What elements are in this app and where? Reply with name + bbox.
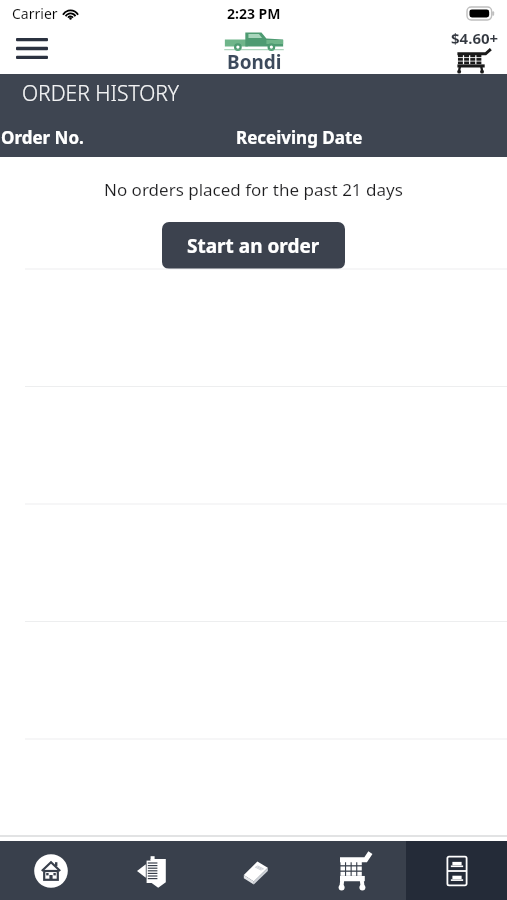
button[interactable]: Catalog bbox=[204, 841, 305, 900]
button[interactable]: Bondi bbox=[223, 27, 285, 74]
staticText: Bondi bbox=[227, 49, 282, 71]
button[interactable]: Cart bbox=[305, 841, 406, 900]
button[interactable]: Cart bbox=[451, 28, 499, 74]
button[interactable]: Orders bbox=[102, 841, 204, 900]
staticText: ORDER HISTORY bbox=[22, 79, 180, 108]
staticText: Start an order bbox=[187, 233, 320, 259]
staticText: $4.60+ bbox=[451, 28, 499, 48]
button[interactable]: Order history bbox=[406, 841, 507, 900]
button[interactable]: Start an order bbox=[162, 222, 345, 269]
staticText: 2:23 PM bbox=[227, 4, 281, 23]
staticText: Order No. bbox=[1, 126, 84, 149]
button[interactable]: Menu bbox=[10, 32, 54, 64]
staticText: Carrier bbox=[12, 4, 58, 23]
button[interactable]: Home bbox=[0, 841, 102, 900]
staticText: Receiving Date bbox=[236, 126, 363, 149]
staticText: No orders placed for the past 21 days bbox=[104, 178, 403, 201]
